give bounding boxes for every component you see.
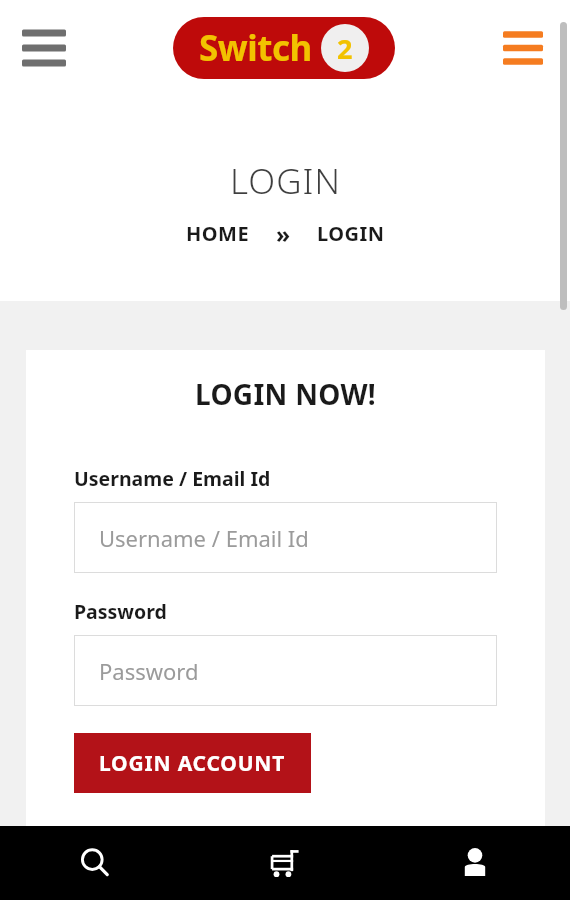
button[interactable]: Open navigation <box>498 23 548 73</box>
staticText: 2 <box>337 30 353 67</box>
button[interactable]: Password <box>74 635 497 706</box>
button[interactable]: Cart <box>190 826 380 900</box>
button[interactable]: Search <box>0 826 190 900</box>
staticText: » <box>276 218 291 249</box>
staticText: Username / Email Id <box>99 523 309 553</box>
button[interactable]: Switch 2 home <box>173 17 395 79</box>
staticText: LOGIN ACCOUNT <box>99 749 286 778</box>
button[interactable]: LOGIN ACCOUNT <box>74 733 311 793</box>
staticText: LOGIN NOW! <box>195 375 377 413</box>
button[interactable]: Account <box>380 826 570 900</box>
staticText: LOGIN <box>230 157 341 205</box>
staticText: Password <box>99 656 199 686</box>
staticText: Username / Email Id <box>74 465 271 492</box>
staticText: LOGIN <box>317 220 385 247</box>
staticText: Switch <box>199 24 312 72</box>
button[interactable]: Username / Email Id <box>74 502 497 573</box>
staticText: HOME <box>186 220 250 247</box>
button[interactable]: HOME <box>186 220 250 247</box>
staticText: Password <box>74 598 167 625</box>
button[interactable]: Menu <box>18 22 70 74</box>
